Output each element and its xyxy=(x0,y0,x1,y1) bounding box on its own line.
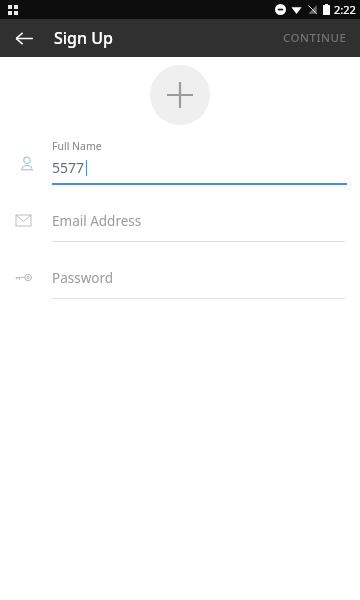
staticText: Password xyxy=(52,269,114,287)
staticText: 5577 xyxy=(52,158,85,177)
button[interactable]: Full Name xyxy=(0,136,360,185)
staticText: Email Address xyxy=(52,212,142,230)
staticText: CONTINUE xyxy=(283,30,347,46)
staticText: Full Name xyxy=(52,139,102,153)
button[interactable]: Password xyxy=(0,272,360,299)
button[interactable]: Email Address xyxy=(0,215,360,242)
button[interactable]: Back xyxy=(6,20,42,56)
staticText: 2:22 xyxy=(334,2,356,17)
staticText: Sign Up xyxy=(54,27,113,49)
button[interactable]: CONTINUE xyxy=(270,21,360,55)
button[interactable]: Add profile photo xyxy=(150,65,210,125)
